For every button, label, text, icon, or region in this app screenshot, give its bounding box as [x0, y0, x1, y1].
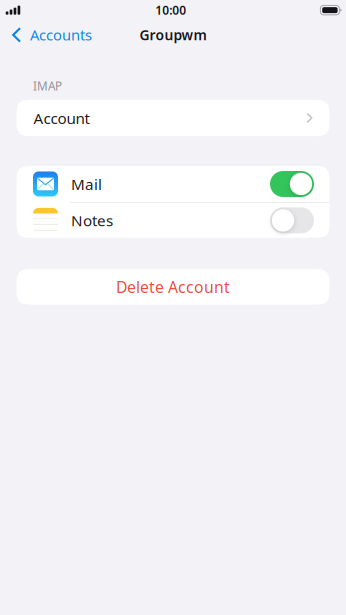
staticText: IMAP [33, 78, 62, 94]
staticText: Groupwm [139, 25, 206, 44]
button[interactable]: Accounts [0, 22, 112, 48]
staticText: Delete Account [116, 276, 230, 298]
staticText: Mail [71, 174, 102, 194]
button[interactable]: Account [16, 100, 329, 136]
staticText: Notes [71, 210, 113, 231]
button[interactable]: Delete Account [16, 269, 329, 305]
staticText: Account [33, 108, 89, 128]
button[interactable]: Mail [16, 166, 329, 202]
staticText: Accounts [30, 25, 92, 45]
staticText: 10:00 [155, 2, 186, 18]
button[interactable]: Notes [16, 203, 329, 238]
